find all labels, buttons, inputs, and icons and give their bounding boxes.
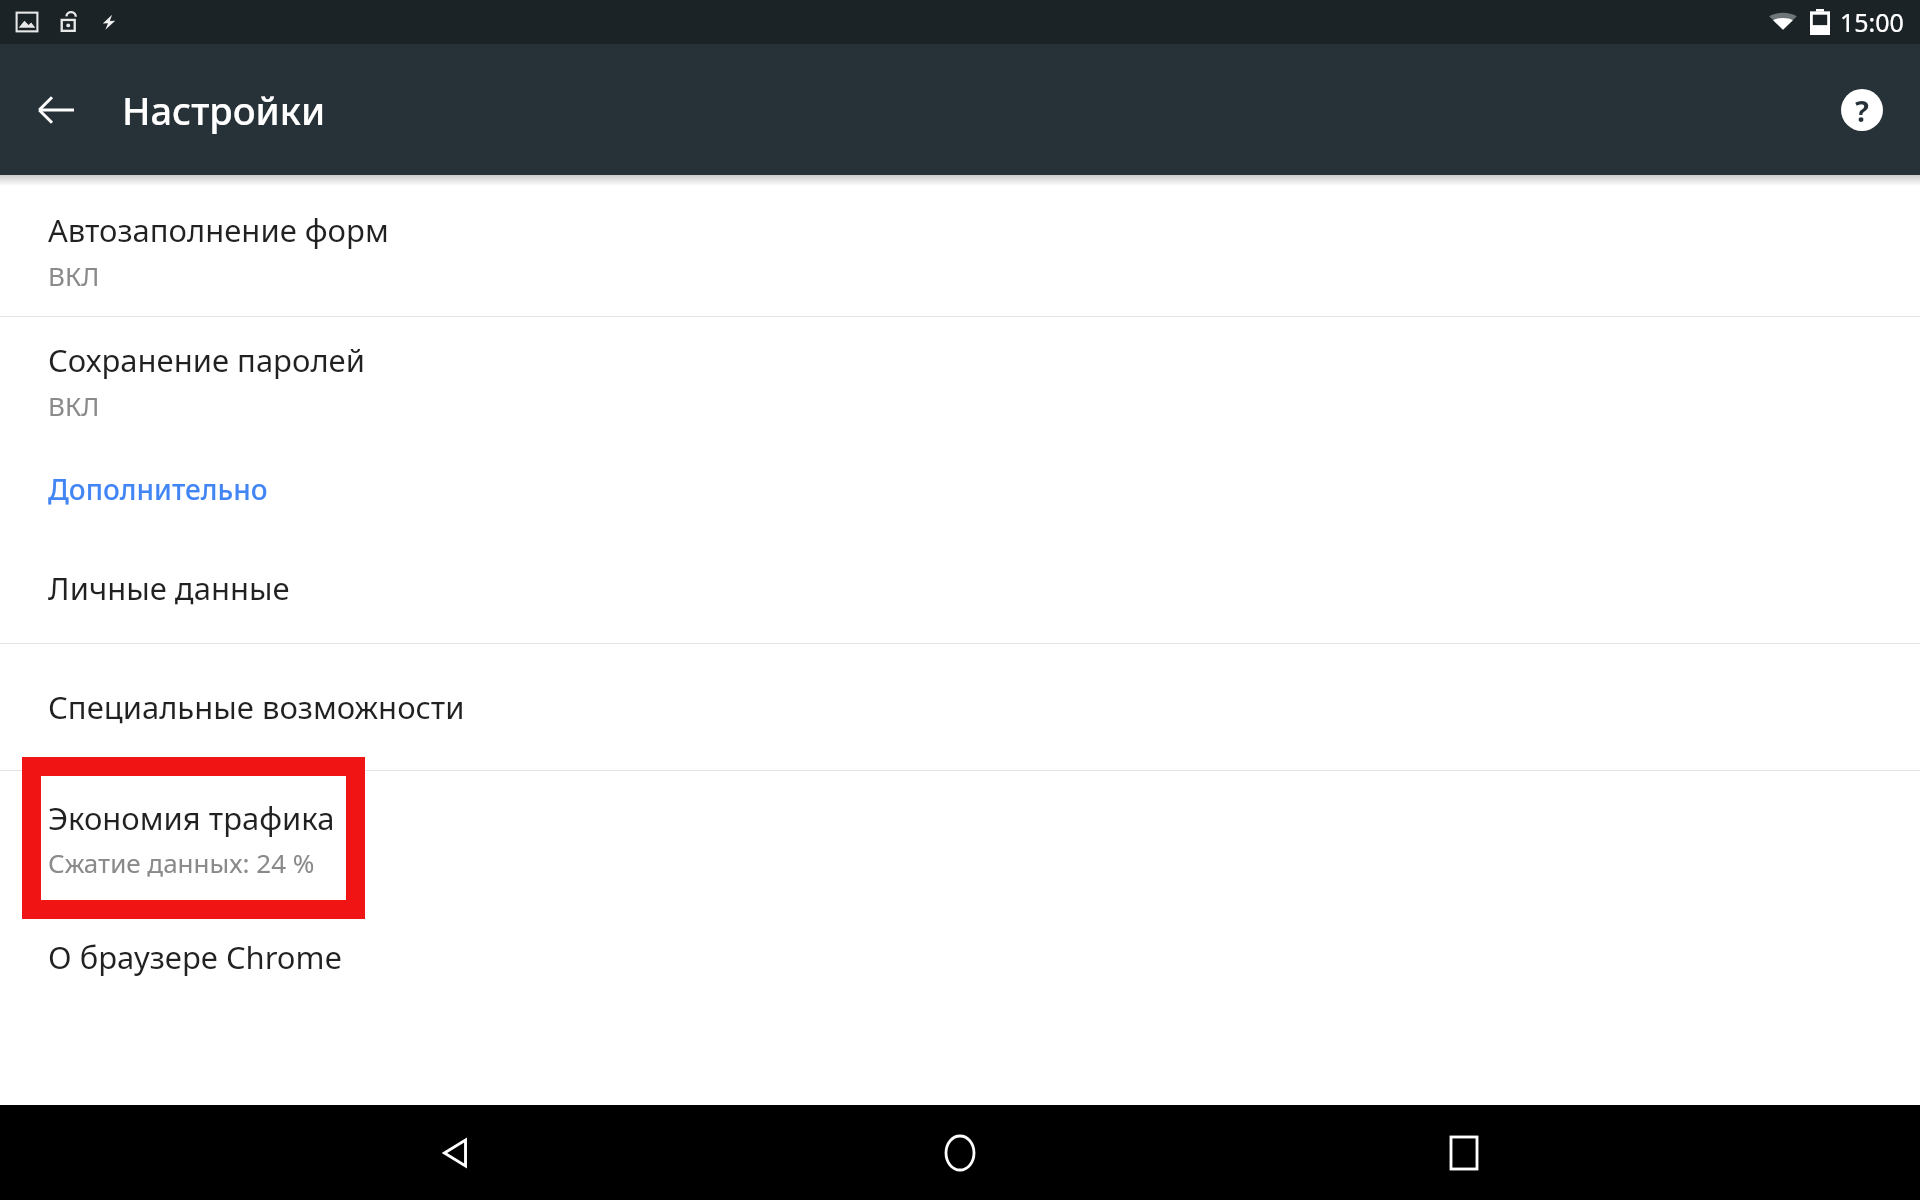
staticText: Сжатие данных: 24 %: [48, 845, 315, 880]
staticText: Автозаполнение форм: [48, 209, 389, 251]
button[interactable]: О браузере Chrome: [0, 905, 1920, 1009]
staticText: ВКЛ: [48, 388, 100, 423]
staticText: О браузере Chrome: [48, 936, 343, 978]
button[interactable]: Назад: [24, 78, 88, 142]
button[interactable]: Специальные возможности: [0, 644, 1920, 770]
staticText: Экономия трафика: [48, 797, 335, 839]
staticText: Настройки: [122, 84, 326, 136]
button[interactable]: Личные данные: [0, 533, 1920, 643]
button[interactable]: Экономия трафика: [0, 771, 1920, 905]
staticText: Сохранение паролей: [48, 339, 365, 381]
button[interactable]: Назад: [408, 1105, 504, 1200]
staticText: 15:00: [1840, 5, 1904, 39]
button[interactable]: Главный экран: [912, 1105, 1008, 1200]
staticText: ?: [1855, 91, 1869, 130]
button[interactable]: Справка: [1830, 78, 1894, 142]
staticText: Специальные возможности: [48, 686, 465, 728]
staticText: Дополнительно: [48, 470, 268, 508]
button[interactable]: Автозаполнение форм: [0, 186, 1920, 316]
staticText: Личные данные: [48, 567, 290, 609]
button[interactable]: Недавние приложения: [1416, 1105, 1512, 1200]
button[interactable]: Сохранение паролей: [0, 317, 1920, 445]
staticText: ВКЛ: [48, 258, 100, 293]
